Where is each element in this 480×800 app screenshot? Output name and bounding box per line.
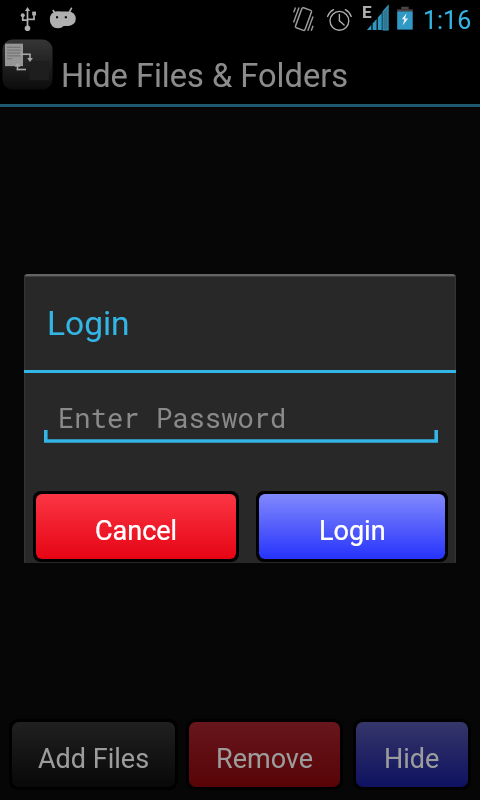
button[interactable]: Login	[259, 494, 445, 559]
other: USB connected	[21, 7, 36, 31]
button[interactable]: Cancel	[36, 494, 236, 559]
button[interactable]: Hide	[356, 722, 468, 787]
staticText: 1:16	[423, 6, 472, 35]
button[interactable]: Remove	[189, 722, 340, 787]
staticText: Login	[319, 515, 386, 547]
staticText: Add Files	[38, 743, 150, 775]
other: Vibrate mode	[289, 4, 317, 34]
staticText: E	[362, 2, 372, 22]
staticText: Login	[47, 304, 130, 343]
other: Battery charging	[396, 6, 414, 31]
staticText: Enter Password	[58, 399, 287, 435]
staticText: Hide	[384, 743, 440, 775]
staticText: Remove	[216, 743, 314, 775]
other: Android	[49, 7, 77, 30]
button[interactable]: Add Files	[12, 722, 175, 787]
other: Alarm set	[326, 5, 354, 33]
button[interactable]: App icon	[2, 39, 53, 90]
other: Mobile signal	[366, 5, 389, 31]
staticText: Hide Files & Folders	[61, 57, 349, 95]
staticText: Cancel	[95, 515, 178, 547]
button[interactable]: Enter Password	[42, 384, 440, 444]
